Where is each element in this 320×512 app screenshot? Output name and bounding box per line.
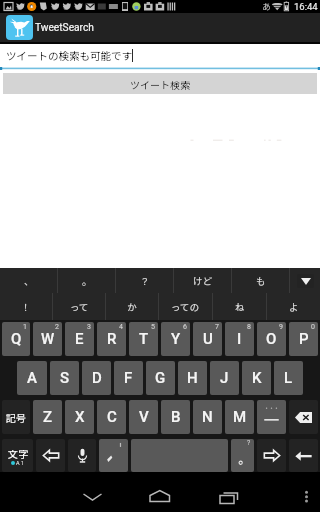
button[interactable]: H (178, 361, 207, 395)
staticText: ? (247, 439, 251, 447)
button[interactable]: T (129, 322, 158, 356)
staticText: って (70, 300, 89, 314)
button[interactable]: M (225, 400, 254, 434)
staticText: G (155, 369, 166, 387)
button[interactable]: P (289, 322, 318, 356)
staticText: T (139, 330, 149, 348)
button[interactable]: よ (267, 293, 320, 320)
button[interactable]: J (210, 361, 239, 395)
staticText: U (203, 330, 213, 348)
staticText: Z (43, 408, 53, 426)
button[interactable]: ツイート検索 (3, 73, 317, 94)
staticText: 8 (247, 323, 251, 331)
staticText: W (41, 330, 55, 348)
staticText: A 1 (16, 460, 25, 466)
staticText: A (27, 369, 37, 387)
staticText: 6 (183, 323, 187, 331)
staticText: F (124, 369, 133, 387)
staticText: H (187, 369, 198, 387)
button[interactable]: B (161, 400, 190, 434)
staticText: O (266, 330, 277, 348)
staticText: ツイート検索 (130, 77, 190, 91)
button[interactable]: Enter (289, 439, 318, 472)
button[interactable]: Q (2, 322, 30, 356)
staticText: J (220, 369, 229, 387)
button[interactable]: TweetSearch (0, 13, 320, 42)
staticText: あ (262, 0, 272, 13)
button[interactable]: 。 (58, 268, 115, 293)
staticText: 5 (151, 323, 155, 331)
button[interactable]: More options (294, 472, 320, 512)
staticText: Y (171, 330, 181, 348)
button[interactable]: E (65, 322, 94, 356)
staticText: 記号 (6, 410, 26, 424)
staticText: 7 (215, 323, 219, 331)
button[interactable]: O (257, 322, 286, 356)
staticText: E (75, 330, 84, 348)
button[interactable]: ？ (116, 268, 173, 293)
button[interactable]: 記号 (2, 400, 30, 434)
button[interactable]: Expand suggestions (290, 268, 320, 293)
button[interactable]: F (114, 361, 143, 395)
button[interactable]: N (193, 400, 222, 434)
button[interactable]: Z (33, 400, 62, 434)
button[interactable]: I (225, 322, 254, 356)
staticText: ？ (140, 274, 150, 288)
button[interactable]: Voice input (68, 439, 96, 472)
button[interactable]: R (97, 322, 126, 356)
button[interactable]: U (193, 322, 222, 356)
staticText: ！ (21, 300, 31, 314)
button[interactable]: W (33, 322, 62, 356)
staticText: ツイートの検索も可能です (6, 48, 132, 63)
staticText: っての (171, 300, 200, 314)
staticText: P (299, 330, 309, 348)
button[interactable]: X (65, 400, 94, 434)
staticText: S (60, 369, 70, 387)
staticText: X (75, 408, 85, 426)
staticText: 4 (119, 323, 123, 331)
button[interactable] (99, 439, 128, 472)
staticText: Q (11, 330, 22, 348)
staticText: B (171, 408, 181, 426)
staticText: L (284, 369, 293, 387)
staticText: よ (289, 300, 299, 314)
button[interactable]: L (274, 361, 303, 395)
button[interactable]: も (232, 268, 289, 293)
button[interactable]: G (146, 361, 175, 395)
staticText: N (202, 408, 213, 426)
button[interactable]: Recents (209, 472, 249, 512)
button[interactable]: V (129, 400, 158, 434)
button[interactable]: Backspace (289, 400, 318, 434)
button[interactable]: けど (174, 268, 231, 293)
button[interactable]: Y (161, 322, 190, 356)
staticText: I (237, 330, 242, 348)
staticText: 。 (82, 274, 92, 288)
button[interactable]: 、 (0, 268, 57, 293)
staticText: か (127, 300, 137, 314)
staticText: 0 (311, 323, 315, 331)
staticText: D (92, 369, 102, 387)
button[interactable]: か (106, 293, 158, 320)
button[interactable]: Hide keyboard (72, 472, 112, 512)
button[interactable]: Dash (257, 400, 286, 434)
button[interactable]: Previous candidate (36, 439, 65, 472)
button[interactable]: っての (159, 293, 212, 320)
button[interactable]: Home (140, 472, 180, 512)
button[interactable]: Next candidate (257, 439, 286, 472)
button[interactable]: ！ (0, 293, 52, 320)
button[interactable]: S (50, 361, 79, 395)
staticText: TweetSearch (35, 22, 94, 34)
button[interactable]: ね (213, 293, 266, 320)
staticText: 3 (87, 323, 91, 331)
button[interactable]: K (242, 361, 271, 395)
button[interactable]: A (17, 361, 47, 395)
button[interactable]: 文字 (2, 439, 33, 472)
staticText: 文字 (8, 446, 28, 460)
button[interactable]: ? (231, 439, 254, 472)
button[interactable]: C (97, 400, 126, 434)
button[interactable]: D (82, 361, 111, 395)
button[interactable]: って (53, 293, 105, 320)
staticText: 1 (23, 323, 27, 331)
staticText: C (107, 408, 117, 426)
